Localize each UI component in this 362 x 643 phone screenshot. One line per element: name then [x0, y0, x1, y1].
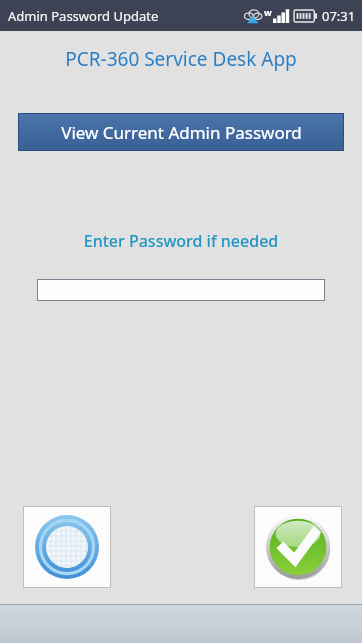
- staticText: w: [264, 6, 272, 18]
- button[interactable]: Exit: [23, 506, 111, 588]
- staticText: PCR-360 Service Desk App: [0, 46, 362, 72]
- button[interactable]: View Current Admin Password: [19, 114, 343, 150]
- button[interactable]: Confirm: [254, 506, 342, 588]
- staticText: Admin Password Update: [8, 7, 159, 25]
- staticText: View Current Admin Password: [61, 121, 302, 144]
- staticText: 07:31: [322, 7, 356, 25]
- staticText: Enter Password if needed: [0, 230, 362, 252]
